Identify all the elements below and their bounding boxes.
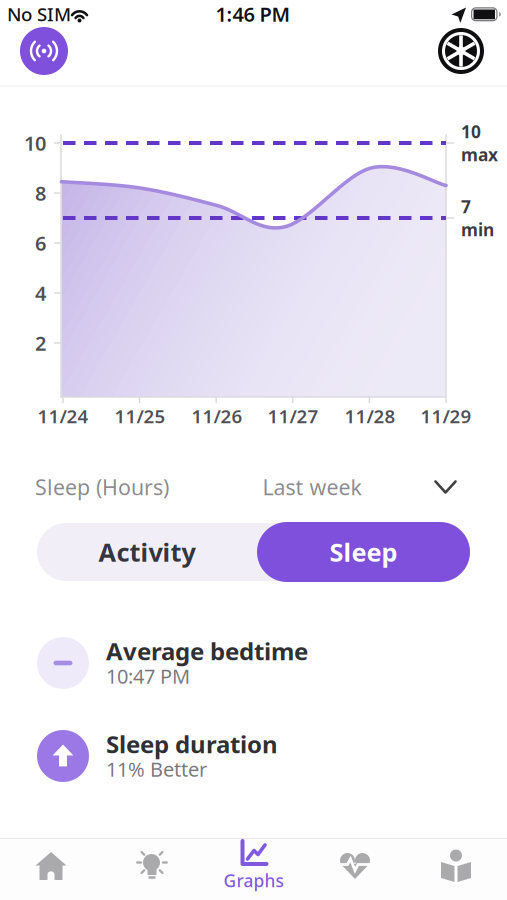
staticText: Graphs (223, 869, 283, 892)
staticText: 11/25 (114, 404, 165, 428)
button[interactable]: Profile (438, 28, 484, 74)
staticText: 4 (35, 280, 46, 306)
staticText: 7 (461, 195, 471, 218)
staticText: Average bedtime (106, 635, 308, 667)
button[interactable]: Learn (421, 838, 491, 894)
button[interactable]: Home (16, 838, 86, 894)
staticText: 11/26 (191, 404, 242, 428)
button[interactable]: Broadcast (20, 27, 68, 75)
staticText: 1:46 PM (215, 1, 290, 27)
staticText: 11/27 (267, 404, 318, 428)
staticText: 11/29 (420, 404, 471, 428)
button[interactable]: Activity (37, 523, 257, 581)
staticText: 10 (461, 120, 481, 143)
staticText: 10 (24, 130, 46, 156)
button[interactable]: Select range (262, 469, 455, 505)
staticText: 8 (35, 180, 46, 206)
staticText: Activity (98, 535, 195, 569)
staticText: Sleep duration (106, 728, 278, 760)
staticText: Sleep (Hours) (35, 473, 169, 501)
staticText: 2 (35, 330, 46, 356)
staticText: 6 (35, 230, 46, 256)
staticText: 10:47 PM (106, 663, 190, 689)
staticText: 11/28 (344, 404, 395, 428)
staticText: 11% Better (106, 756, 207, 782)
staticText: max (461, 143, 498, 166)
button[interactable]: Tips (117, 838, 187, 894)
staticText: Sleep (329, 535, 397, 569)
staticText: 11/24 (37, 404, 88, 428)
button[interactable]: Health (320, 838, 390, 894)
staticText: Last week (262, 473, 361, 501)
button[interactable]: Graphs (213, 838, 293, 894)
staticText: min (461, 218, 494, 241)
button[interactable]: Sleep (257, 522, 470, 582)
staticText: No SIM (7, 2, 71, 26)
